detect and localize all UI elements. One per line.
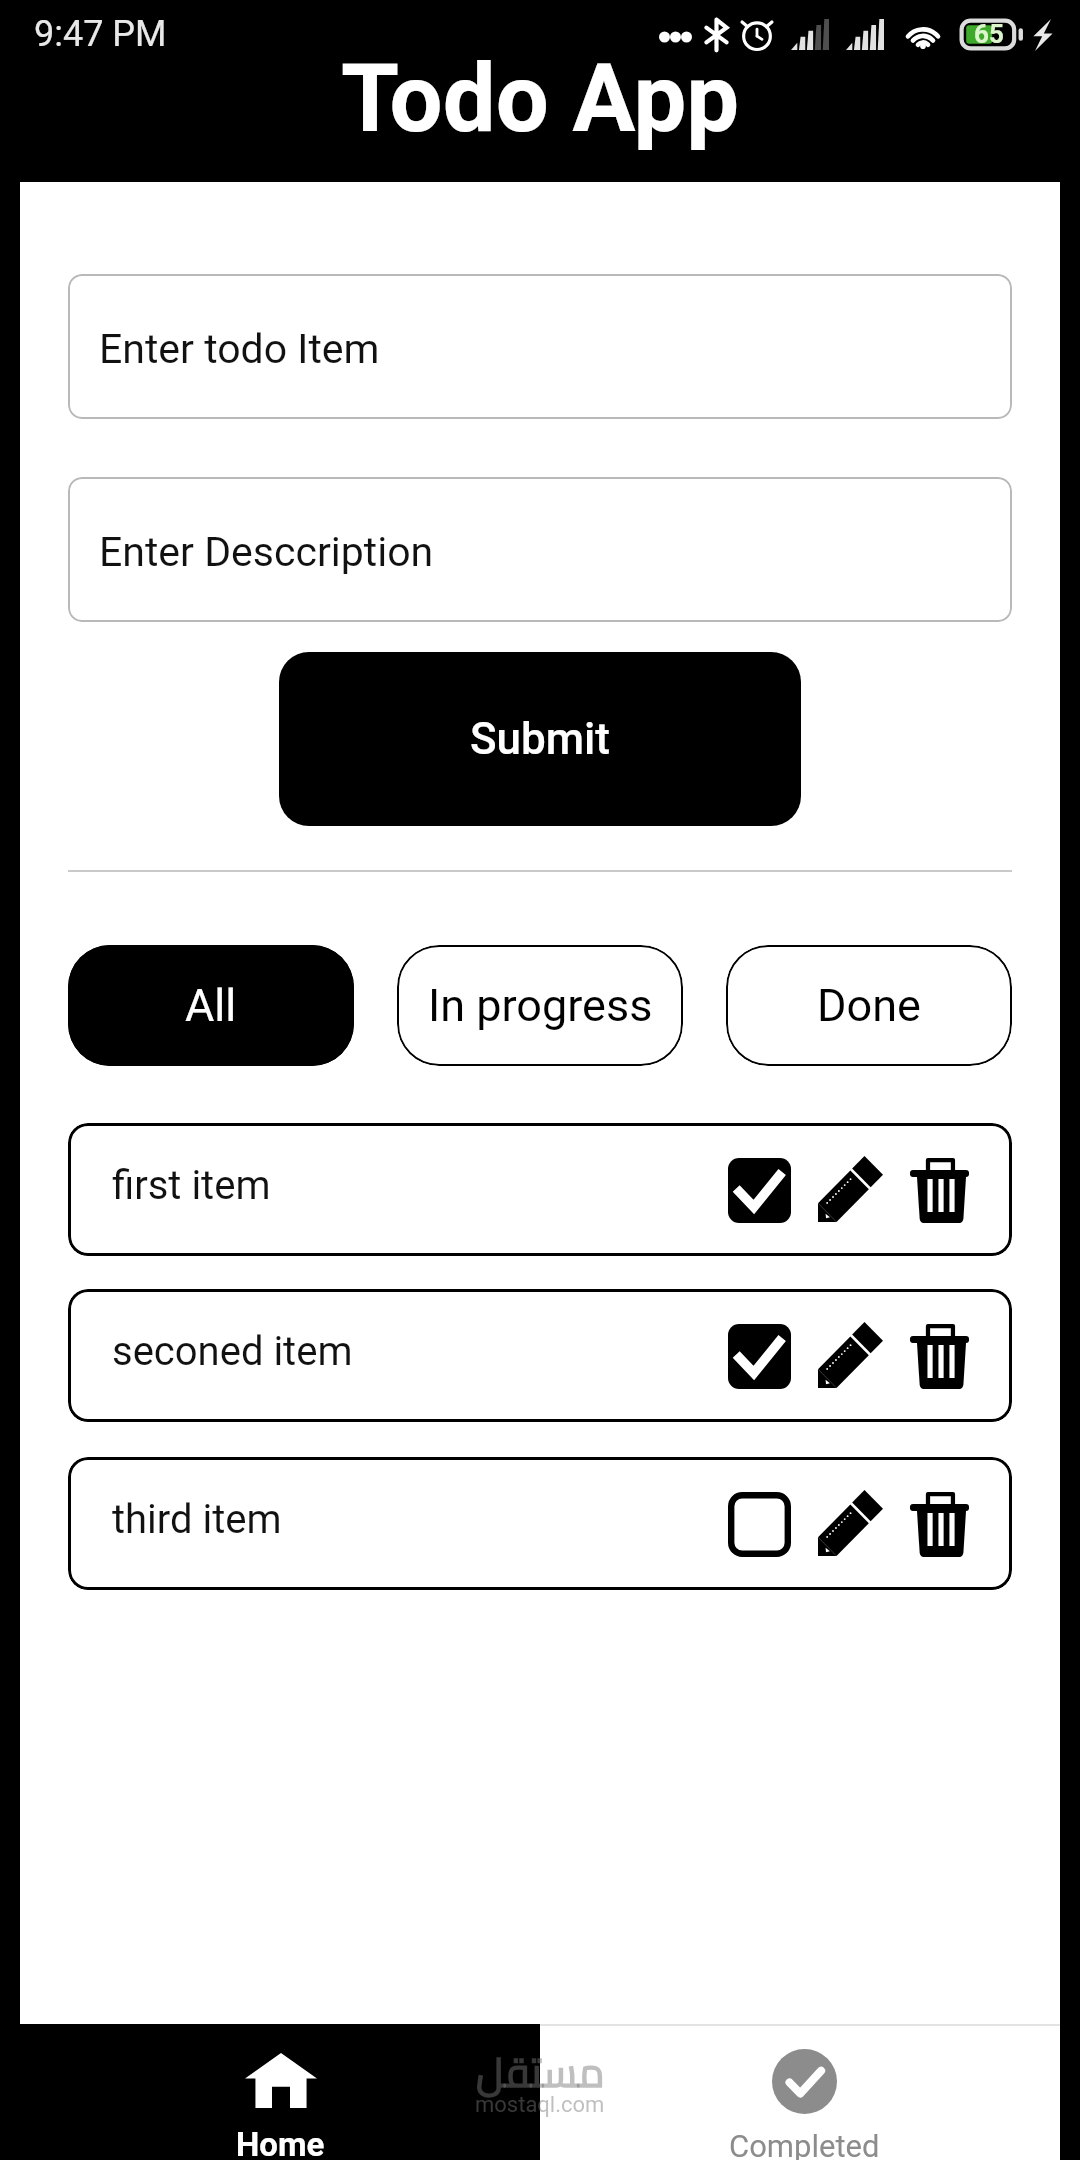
button[interactable]: Delete [900, 1303, 984, 1409]
button[interactable]: Edit [806, 1303, 900, 1409]
button[interactable]: In progress [397, 945, 683, 1066]
button[interactable]: Enter Desccription [68, 477, 1012, 622]
button[interactable]: third item [68, 1457, 1012, 1590]
staticText: Todo App [341, 44, 740, 154]
staticText: first item [112, 1162, 271, 1209]
staticText: مستقل [476, 2034, 605, 2111]
staticText: Enter todo Item [99, 325, 380, 373]
button[interactable]: seconed item [68, 1289, 1012, 1422]
button[interactable]: Completed [540, 2024, 1060, 2160]
button[interactable]: Home [20, 2024, 540, 2160]
button[interactable]: Delete [900, 1471, 984, 1577]
button[interactable]: Toggle done [712, 1137, 806, 1243]
staticText: Submit [470, 713, 611, 765]
staticText: Completed [729, 2128, 880, 2160]
button[interactable]: Enter todo Item [68, 274, 1012, 419]
button[interactable]: All [68, 945, 354, 1066]
button[interactable]: Toggle done [712, 1471, 806, 1577]
staticText: 9:47 PM [34, 13, 167, 55]
staticText: Home [236, 2125, 325, 2160]
button[interactable]: first item [68, 1123, 1012, 1256]
staticText: Enter Desccription [99, 528, 434, 576]
button[interactable]: Submit [279, 652, 801, 826]
staticText: All [185, 979, 237, 1032]
staticText: 65 [974, 19, 1004, 49]
staticText: In progress [428, 979, 653, 1032]
staticText: third item [112, 1496, 282, 1543]
staticText: Done [817, 979, 921, 1032]
button[interactable]: Toggle done [712, 1303, 806, 1409]
button[interactable]: Delete [900, 1137, 984, 1243]
staticText: mostaql.com [475, 2092, 605, 2118]
button[interactable]: Edit [806, 1137, 900, 1243]
staticText: seconed item [112, 1328, 353, 1375]
button[interactable]: Edit [806, 1471, 900, 1577]
button[interactable]: Done [726, 945, 1012, 1066]
